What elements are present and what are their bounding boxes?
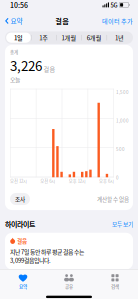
staticText: 오전 6시 xyxy=(40,178,55,184)
button[interactable]: 1년 xyxy=(107,33,132,43)
staticText: 요약 xyxy=(10,16,22,26)
staticText: 오전 12시 xyxy=(10,178,27,184)
staticText: 하이라이트 xyxy=(5,219,35,229)
button[interactable]: 1개월 xyxy=(57,33,81,43)
staticText: 데이터 추가 xyxy=(102,16,133,25)
staticText: 6개월 xyxy=(87,33,102,42)
staticText: 3,099걸음입니다. xyxy=(10,256,51,264)
button[interactable]: 조사 xyxy=(10,193,30,205)
button[interactable]: 공유 xyxy=(46,273,92,290)
button[interactable]: 검색 xyxy=(92,273,138,290)
staticText: 1년 xyxy=(115,33,124,42)
staticText: 검색 xyxy=(111,283,119,290)
staticText: 3,226 xyxy=(10,55,42,75)
staticText: 1주 xyxy=(39,33,48,42)
button[interactable]: 걸음 xyxy=(5,233,133,269)
staticText: 오후 12시 xyxy=(69,178,86,184)
button[interactable]: 1일 xyxy=(6,33,31,43)
staticText: 10:56 xyxy=(10,0,28,10)
staticText: 총계 xyxy=(10,48,18,55)
staticText: 1,000 xyxy=(116,117,129,124)
staticText: 요약 xyxy=(19,283,27,290)
staticText: 5G xyxy=(111,1,118,9)
staticText: 모두 보기 xyxy=(112,220,133,228)
staticText: 오후 6시 xyxy=(99,178,114,184)
staticText: 계산할 수 없음 xyxy=(97,195,129,203)
staticText: 1일 xyxy=(14,33,23,42)
staticText: 오늘 xyxy=(10,75,20,84)
staticText: 걸음 xyxy=(17,237,27,245)
button[interactable]: 6개월 xyxy=(82,33,107,43)
button[interactable]: 1주 xyxy=(31,33,56,43)
button[interactable]: 데이터 추가 xyxy=(98,14,138,27)
staticText: 1개월 xyxy=(61,33,76,42)
staticText: 500 xyxy=(116,146,125,152)
button[interactable]: 요약 xyxy=(0,14,26,28)
staticText: 지난 7일 동안 하루 평균 걸음 수는 xyxy=(10,247,84,256)
staticText: 조사 xyxy=(15,195,25,203)
staticText: 걸음 xyxy=(55,16,69,26)
button[interactable]: 모두 보기 xyxy=(112,220,133,228)
staticText: 공유 xyxy=(65,283,73,290)
staticText: 걸음 xyxy=(44,64,56,73)
staticText: 0 xyxy=(116,174,119,181)
button[interactable]: 요약 xyxy=(0,273,46,290)
staticText: 1,500 xyxy=(116,89,129,95)
